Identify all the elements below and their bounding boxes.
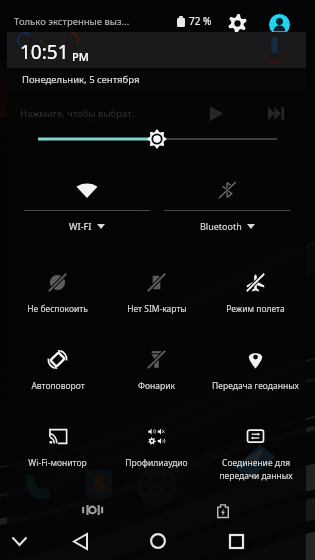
staticText: Нажмите, чтобы выбрат… bbox=[20, 107, 139, 120]
button[interactable]: Play bbox=[203, 102, 230, 124]
staticText: Профилиаудио bbox=[125, 457, 188, 469]
staticText: 10:51 bbox=[20, 39, 69, 65]
button[interactable]: User profile bbox=[269, 14, 290, 35]
staticText: Не беспокоить bbox=[27, 303, 88, 315]
staticText: Режим полета bbox=[226, 303, 285, 315]
button[interactable]: Не беспокоить bbox=[8, 258, 107, 335]
button[interactable]: Next track bbox=[262, 102, 289, 124]
button[interactable]: Back bbox=[63, 524, 97, 558]
button[interactable]: Нет SIM-карты bbox=[107, 258, 206, 335]
staticText: Передача геоданных bbox=[212, 380, 299, 392]
button[interactable]: Bluetooth bbox=[164, 171, 290, 241]
button[interactable]: Wi-Fi-монитор bbox=[8, 412, 107, 489]
staticText: Нет SIM-карты bbox=[127, 303, 187, 315]
staticText: Соединение для передачи данных bbox=[219, 457, 293, 482]
button[interactable]: Соединение для передачи данных bbox=[206, 412, 305, 489]
button[interactable]: Home bbox=[141, 524, 175, 558]
button[interactable]: Профилиаудио bbox=[107, 412, 206, 489]
button[interactable]: Автоповорот bbox=[8, 335, 107, 412]
button[interactable]: Settings bbox=[228, 14, 247, 33]
button[interactable]: Фонарик bbox=[107, 335, 206, 412]
staticText: Фонарик bbox=[138, 380, 175, 392]
staticText: Только экстренные выз… bbox=[14, 15, 130, 28]
button[interactable]: Recent apps bbox=[219, 524, 253, 558]
staticText: PM bbox=[72, 49, 89, 64]
staticText: Wi-Fi-монитор bbox=[28, 457, 87, 469]
staticText: Bluetooth bbox=[200, 220, 242, 232]
staticText: 72 % bbox=[189, 14, 212, 28]
staticText: Понедельник, 5 сентября bbox=[22, 73, 140, 86]
staticText: Автоповорот bbox=[31, 380, 85, 392]
button[interactable]: Режим полета bbox=[206, 258, 305, 335]
button[interactable]: Collapse shade bbox=[2, 524, 36, 558]
staticText: WI-FI bbox=[69, 220, 92, 232]
button[interactable]: Передача геоданных bbox=[206, 335, 305, 412]
button[interactable]: WI-FI bbox=[24, 171, 150, 241]
